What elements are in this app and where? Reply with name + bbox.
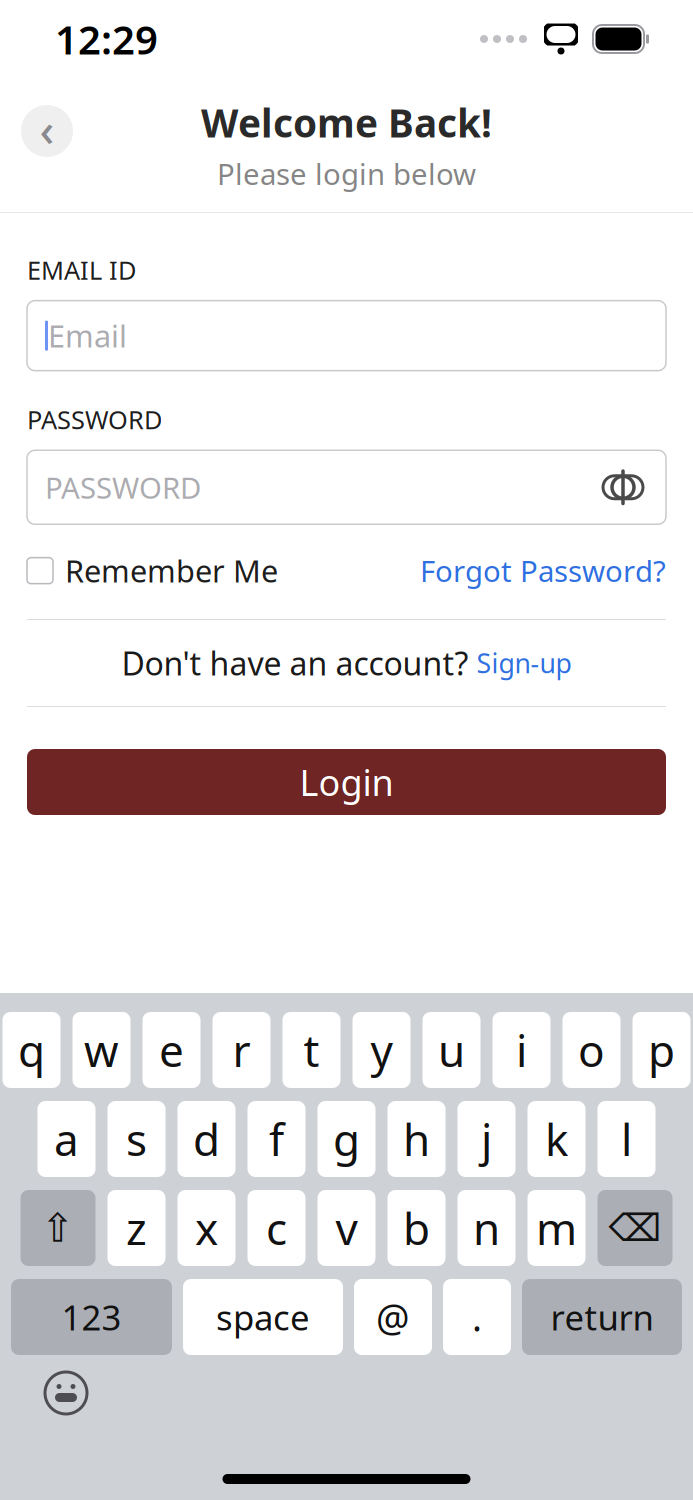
button[interactable]: a — [37, 1101, 95, 1177]
button[interactable]: p — [632, 1012, 690, 1088]
staticText: Forgot Password? — [420, 551, 666, 590]
button[interactable]: Back — [21, 99, 73, 163]
button[interactable]: m — [527, 1190, 585, 1266]
staticText: j — [481, 1110, 492, 1168]
staticText: e — [159, 1021, 184, 1079]
button[interactable]: g — [317, 1101, 375, 1177]
staticText: Login — [299, 758, 393, 806]
staticText: ‹ — [39, 99, 54, 159]
button[interactable]: w — [72, 1012, 130, 1088]
button[interactable]: Remember Me — [27, 550, 278, 591]
staticText: ⇧ — [41, 1205, 75, 1251]
button[interactable]: Emoji — [45, 1372, 87, 1414]
staticText: PASSWORD — [27, 403, 162, 436]
button[interactable]: space — [183, 1279, 343, 1355]
button[interactable]: b — [387, 1190, 445, 1266]
staticText: w — [84, 1021, 119, 1079]
button[interactable]: c — [247, 1190, 305, 1266]
button[interactable]: n — [457, 1190, 515, 1266]
button[interactable]: . — [443, 1279, 511, 1355]
staticText: y — [370, 1021, 392, 1079]
staticText: u — [438, 1021, 465, 1079]
staticText: return — [550, 1294, 653, 1340]
button[interactable]: j — [457, 1101, 515, 1177]
staticText: Please login below — [217, 154, 476, 193]
button[interactable]: t — [282, 1012, 340, 1088]
button[interactable]: Shift — [20, 1190, 95, 1266]
button[interactable]: o — [562, 1012, 620, 1088]
staticText: t — [303, 1021, 319, 1079]
staticText: Don't have an account? — [121, 642, 468, 684]
button[interactable]: u — [422, 1012, 480, 1088]
staticText: s — [126, 1110, 147, 1168]
button[interactable]: Forgot Password? — [420, 551, 666, 590]
button[interactable]: Email — [27, 301, 666, 371]
staticText: k — [545, 1110, 568, 1168]
staticText: PASSWORD — [45, 468, 201, 507]
button[interactable]: l — [597, 1101, 655, 1177]
staticText: h — [403, 1110, 430, 1168]
button[interactable]: z — [107, 1190, 165, 1266]
button[interactable]: e — [142, 1012, 200, 1088]
staticText: r — [232, 1021, 250, 1079]
staticText: o — [578, 1021, 605, 1079]
staticText: i — [516, 1021, 527, 1079]
staticText: . — [472, 1292, 482, 1342]
button[interactable]: k — [527, 1101, 585, 1177]
staticText: 123 — [61, 1294, 121, 1340]
staticText: p — [648, 1021, 675, 1079]
button[interactable]: Delete — [597, 1190, 672, 1266]
button[interactable]: PASSWORD — [27, 450, 666, 524]
staticText: m — [536, 1199, 577, 1257]
staticText: d — [193, 1110, 220, 1168]
button[interactable]: v — [317, 1190, 375, 1266]
staticText: n — [473, 1199, 500, 1257]
staticText: a — [54, 1110, 79, 1168]
staticText: ⌫ — [608, 1207, 661, 1249]
staticText: EMAIL ID — [27, 253, 136, 287]
staticText: space — [216, 1294, 310, 1340]
button[interactable]: d — [177, 1101, 235, 1177]
staticText: x — [195, 1199, 218, 1257]
staticText: @ — [376, 1292, 410, 1342]
button[interactable]: x — [177, 1190, 235, 1266]
button[interactable]: 123 — [11, 1279, 172, 1355]
staticText: Sign-up — [476, 645, 571, 681]
staticText: v — [335, 1199, 357, 1257]
staticText: g — [333, 1110, 360, 1168]
button[interactable]: Don't have an account? — [27, 620, 666, 706]
button[interactable]: q — [2, 1012, 60, 1088]
button[interactable]: r — [212, 1012, 270, 1088]
staticText: Welcome Back! — [201, 97, 492, 148]
staticText: q — [18, 1021, 45, 1079]
staticText: Remember Me — [65, 550, 278, 591]
button[interactable]: f — [247, 1101, 305, 1177]
staticText: z — [126, 1199, 147, 1257]
staticText: Email — [48, 315, 127, 356]
staticText: b — [403, 1199, 430, 1257]
staticText: f — [269, 1110, 284, 1168]
button[interactable]: y — [352, 1012, 410, 1088]
staticText: c — [266, 1199, 287, 1257]
button[interactable]: Login — [27, 749, 666, 815]
button[interactable]: h — [387, 1101, 445, 1177]
staticText: l — [621, 1110, 632, 1168]
staticText: 12:29 — [55, 12, 158, 65]
button[interactable]: i — [492, 1012, 550, 1088]
button[interactable]: @ — [354, 1279, 432, 1355]
button[interactable]: s — [107, 1101, 165, 1177]
button[interactable]: return — [522, 1279, 682, 1355]
